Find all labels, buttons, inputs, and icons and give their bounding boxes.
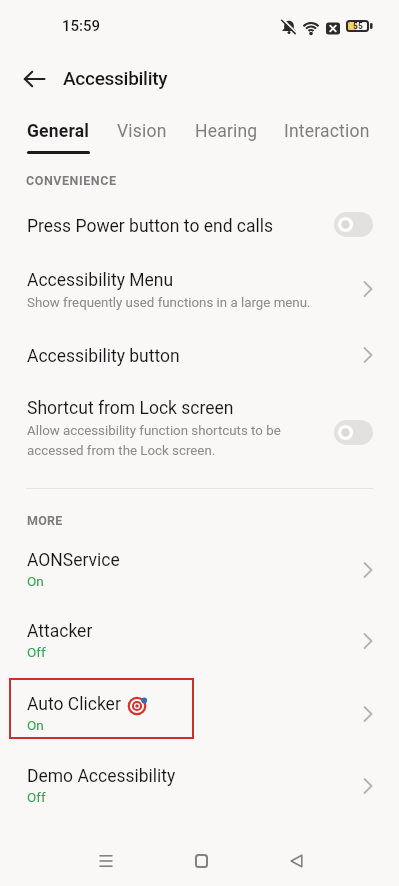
staticText: Show frequently used functions in a larg… xyxy=(27,295,311,311)
button[interactable] xyxy=(86,841,126,881)
staticText: Accessibility button xyxy=(27,346,180,367)
staticText: On xyxy=(27,717,44,733)
staticText: Accessibility xyxy=(63,67,168,89)
staticText: Shortcut from Lock screen xyxy=(27,398,234,419)
staticText: Auto Clicker xyxy=(27,694,121,715)
staticText: Press Power button to end calls xyxy=(27,216,274,237)
button[interactable] xyxy=(14,63,54,95)
staticText: MORE xyxy=(27,513,63,528)
staticText: On xyxy=(27,573,44,589)
button[interactable] xyxy=(276,841,316,881)
staticText: Off xyxy=(27,789,46,805)
button[interactable]: AONService xyxy=(0,538,399,602)
button[interactable]: Accessibility button xyxy=(0,330,399,380)
staticText: 55 xyxy=(353,21,363,31)
button[interactable]: Auto Clicker xyxy=(0,682,399,746)
staticText: 15:59 xyxy=(62,17,101,35)
staticText: AONService xyxy=(27,550,120,571)
staticText: accessed from the Lock screen. xyxy=(27,443,216,459)
staticText: CONVENIENCE xyxy=(26,173,117,188)
staticText: Allow accessibility function shortcuts t… xyxy=(27,423,281,439)
button[interactable]: Demo Accessibility xyxy=(0,754,399,818)
staticText: Off xyxy=(27,644,46,660)
staticText: Demo Accessibility xyxy=(27,766,176,787)
button[interactable]: General xyxy=(27,121,90,142)
staticText: Attacker xyxy=(27,621,93,642)
button[interactable]: Vision xyxy=(117,121,167,142)
staticText: Accessibility Menu xyxy=(27,270,174,291)
button[interactable]: Attacker xyxy=(0,609,399,673)
button[interactable]: Shortcut from Lock screen xyxy=(0,388,399,468)
button[interactable]: Hearing xyxy=(195,121,258,142)
button[interactable] xyxy=(181,841,221,881)
button[interactable]: Accessibility Menu xyxy=(0,255,399,320)
button[interactable]: Press Power button to end calls xyxy=(0,200,399,250)
button[interactable]: Interaction xyxy=(284,121,370,142)
